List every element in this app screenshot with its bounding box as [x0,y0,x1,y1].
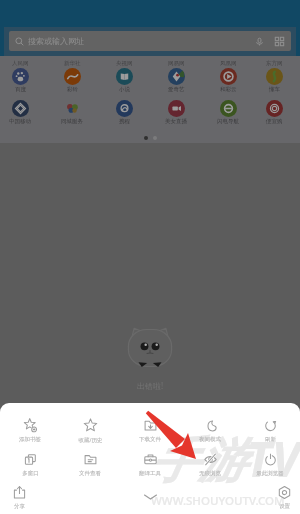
button[interactable]: 多窗口 [0,452,60,477]
staticText: 网易网 [168,60,185,67]
staticText: 爱奇艺 [168,86,185,93]
staticText: 出错啦! [137,380,164,391]
staticText: 搜索或输入网址 [28,36,84,46]
staticText: 文件查看 [79,470,101,477]
staticText: 最此浏览器 [256,470,284,477]
button[interactable]: Voice search [254,36,265,47]
button[interactable]: 携程 [98,100,150,125]
button[interactable]: 文件查看 [60,452,120,477]
button[interactable]: 下载文件 [120,418,180,443]
button[interactable]: 人民网 [0,60,46,93]
button[interactable]: 新华社 [46,60,98,93]
staticText: 凤凰网 [220,60,237,67]
button[interactable]: 央视网 [98,60,150,93]
button[interactable]: 设置 [275,485,294,510]
staticText: 懂车 [269,86,280,93]
staticText: 闪电导航 [217,118,239,125]
button[interactable]: 夜间模式 [180,418,240,443]
staticText: 分享 [14,503,25,510]
staticText: 中国移动 [9,118,31,125]
button[interactable]: 无痕浏览 [180,452,240,477]
staticText: 多窗口 [22,470,39,477]
button[interactable]: 同城服务 [46,100,98,125]
staticText: 手游TV [150,426,300,492]
staticText: 美女直播 [165,118,187,125]
staticText: 刷新 [265,436,276,443]
button[interactable]: 分享 [10,485,29,510]
button[interactable]: 翻译工具 [120,452,180,477]
staticText: 无痕浏览 [199,470,221,477]
staticText: 下载文件 [139,436,161,443]
staticText: 夜间模式 [199,436,221,443]
staticText: 彩铃 [67,86,78,93]
staticText: 新华社 [64,60,81,67]
button[interactable]: Collapse menu [139,491,161,503]
button[interactable]: 中国移动 [0,100,46,125]
staticText: 小说 [119,86,130,93]
button[interactable]: 便宜购 [254,100,294,125]
button[interactable]: 美女直播 [150,100,202,125]
button[interactable]: 收藏/历史 [60,418,120,444]
staticText: 人民网 [12,60,29,67]
button[interactable]: 网易网 [150,60,202,93]
staticText: 东方网 [266,60,283,67]
button[interactable]: 刷新 [240,418,300,443]
staticText: 和彩云 [220,86,237,93]
staticText: 携程 [119,118,130,125]
staticText: 便宜购 [266,118,283,125]
staticText: 添加书签 [19,436,41,443]
button[interactable]: 闪电导航 [202,100,254,125]
button[interactable]: Scan QR code [274,36,285,47]
staticText: 收藏/历史 [78,436,103,444]
button[interactable]: 添加书签 [0,418,60,443]
button[interactable]: 凤凰网 [202,60,254,93]
button[interactable]: 最此浏览器 [240,452,300,477]
staticText: 翻译工具 [139,470,161,477]
staticText: WWW.SHOUYOUTV.COM [151,493,285,509]
staticText: 央视网 [116,60,133,67]
staticText: 百度 [15,86,26,93]
staticText: 设置 [279,503,290,510]
button[interactable]: 东方网 [254,60,294,93]
button[interactable]: 搜索或输入网址 [9,31,291,51]
staticText: 同城服务 [61,118,83,125]
